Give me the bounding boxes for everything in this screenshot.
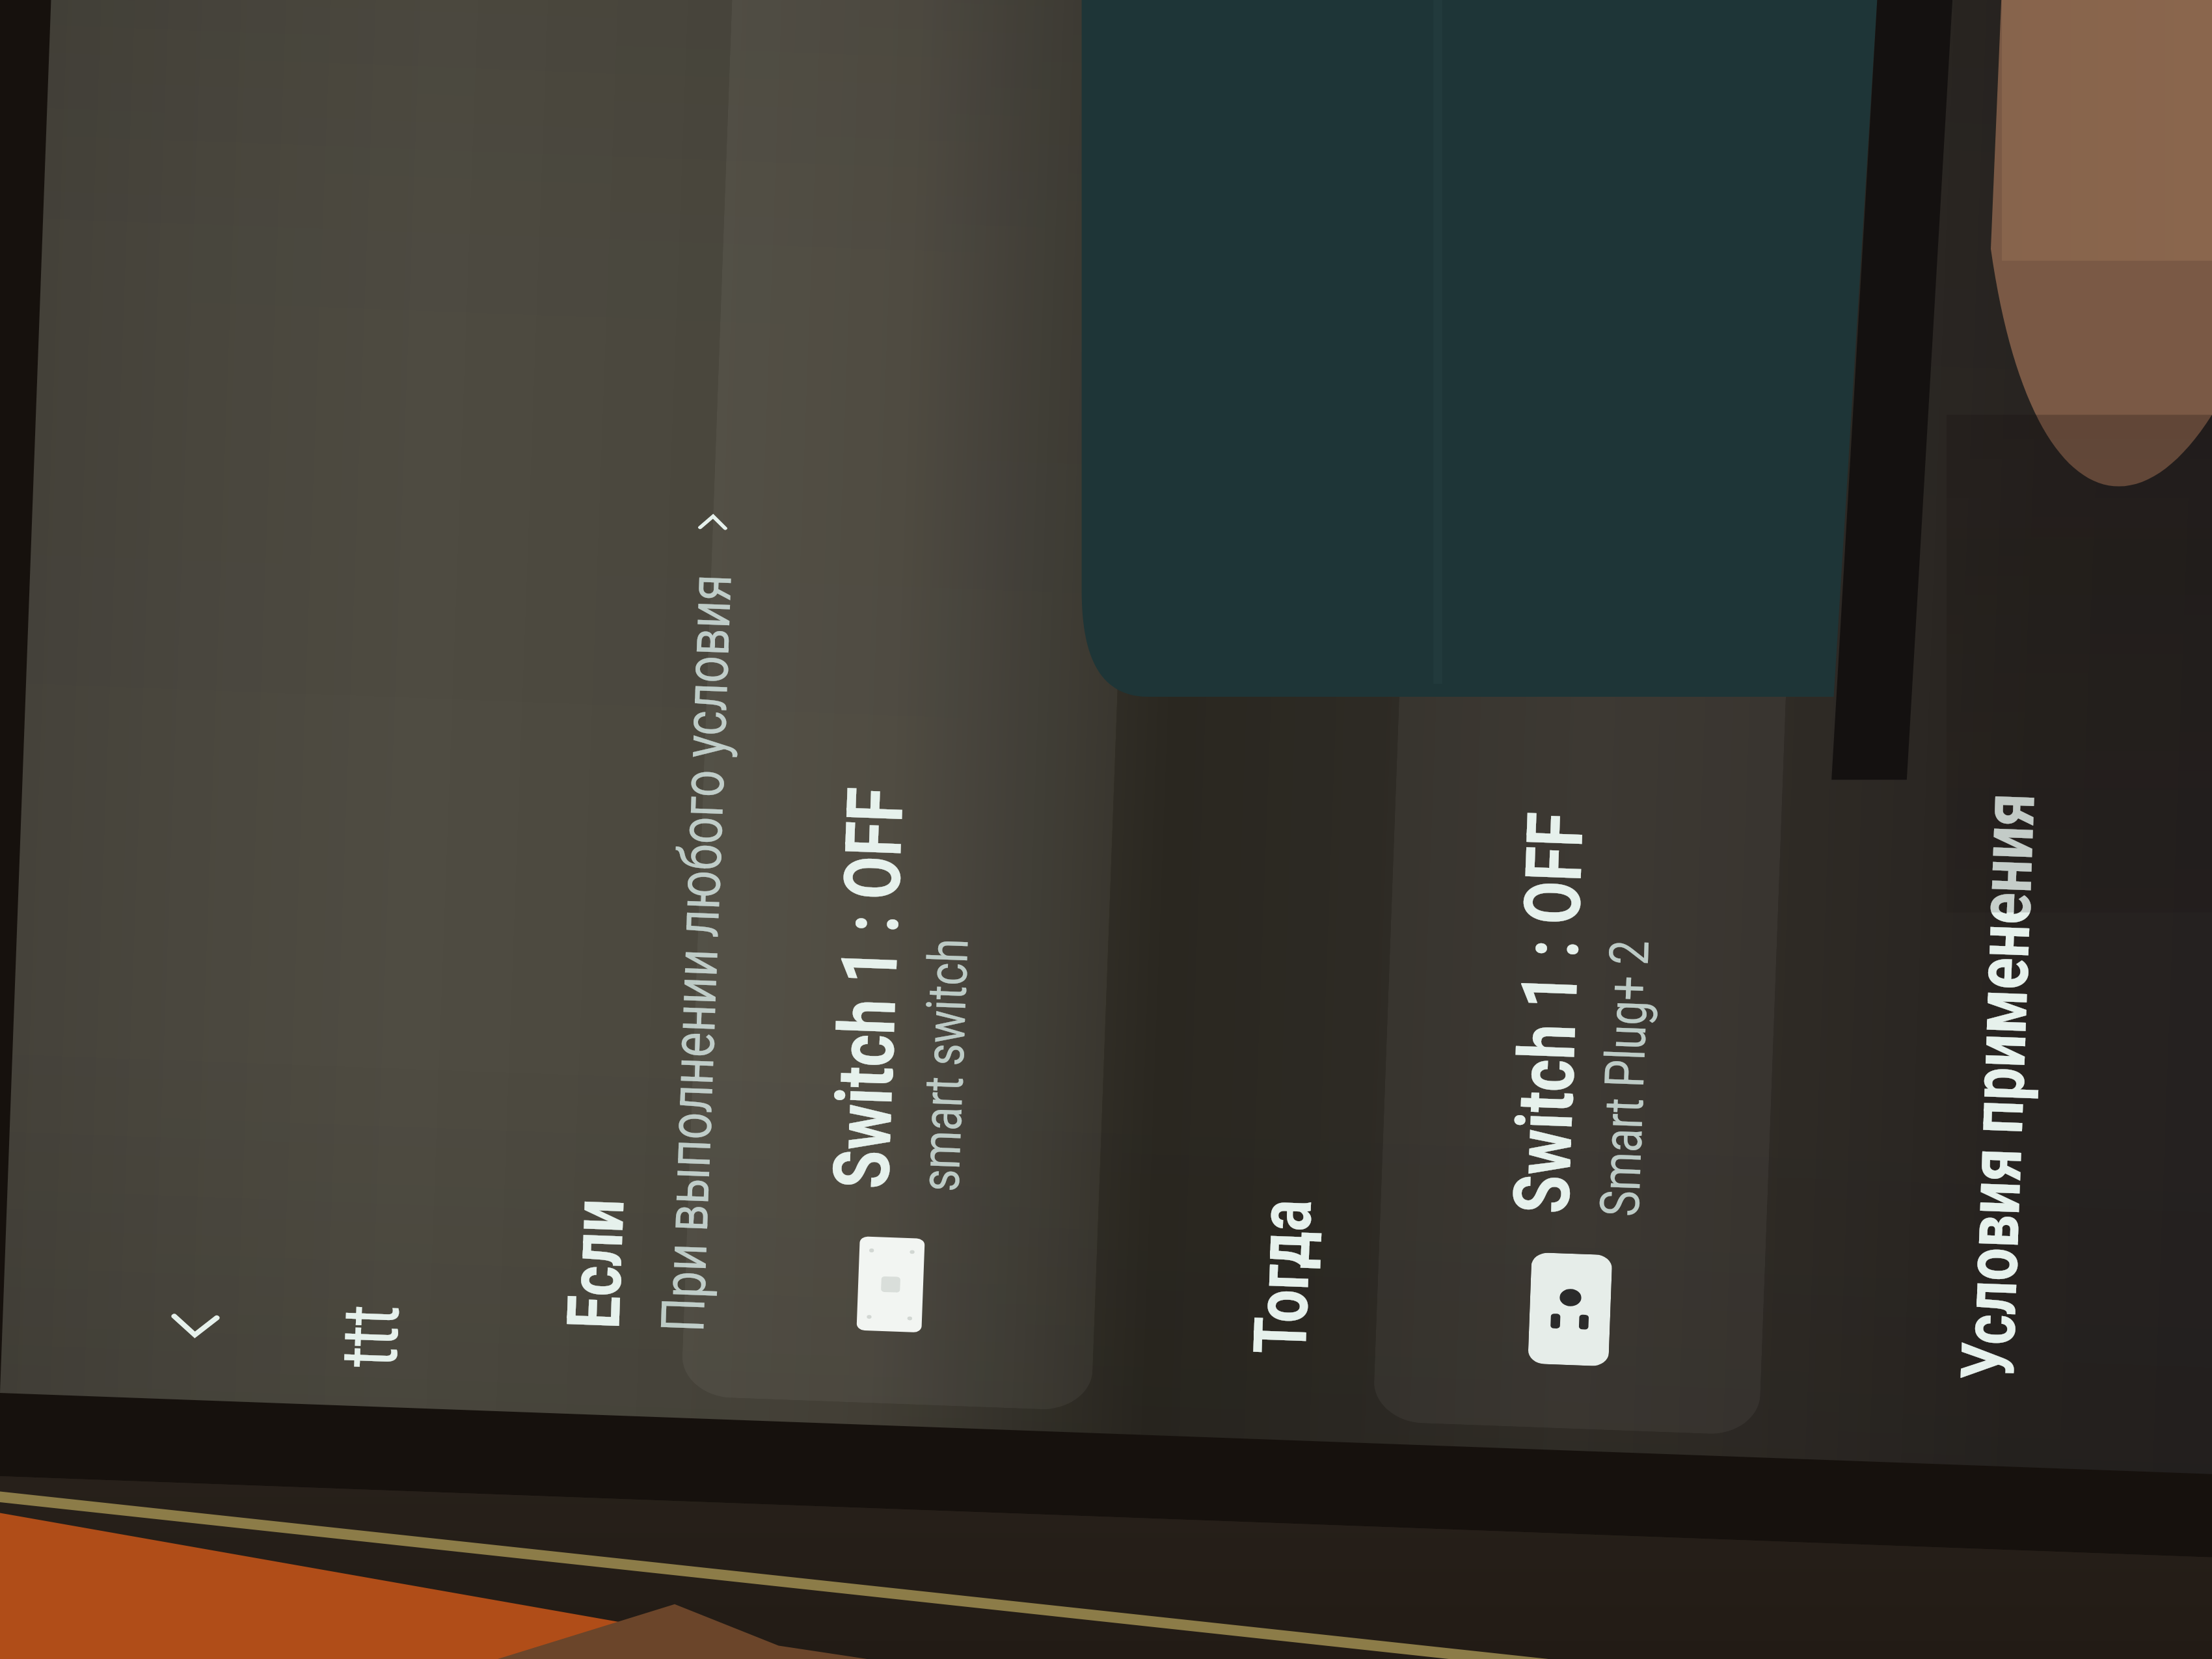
button[interactable]: Back [135,1259,256,1380]
button[interactable]: Тогда [1212,0,1399,1442]
button[interactable]: Switch 1 : OFF [681,0,1146,1411]
staticText: При выполнении любого условия [648,573,746,1333]
button[interactable]: Условия применения [1919,0,2106,1468]
staticText: Switch 1 : OFF [816,786,922,1190]
button[interactable]: Если [525,0,794,1420]
button[interactable]: Switch 1 : OFF [1373,0,1814,1436]
staticText: smart switch [908,937,981,1193]
staticText: Условия применения [1944,791,2052,1381]
staticText: Если [551,1197,641,1330]
button[interactable]: Change condition type [679,485,747,549]
staticText: Switch 1 : OFF [1496,811,1603,1215]
staticText: ttt [323,1303,418,1369]
staticText: Smart Plug+ 2 [1588,939,1662,1218]
staticText: Тогда [1237,1198,1329,1356]
